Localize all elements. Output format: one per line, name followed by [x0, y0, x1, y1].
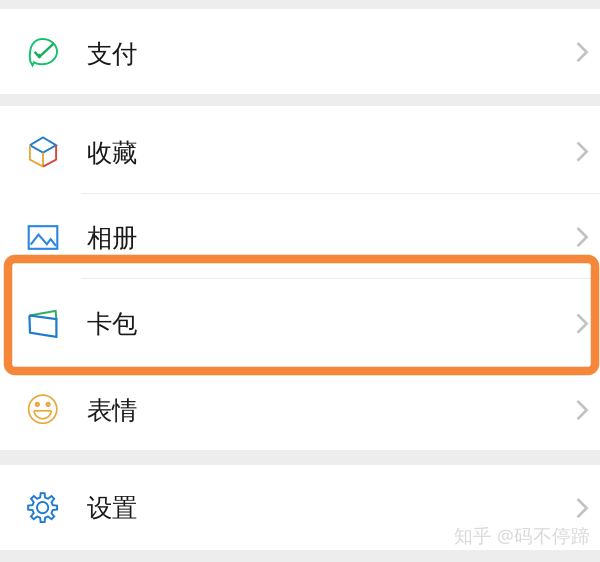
button[interactable]: 支付 — [0, 9, 600, 94]
button[interactable]: 收藏 — [0, 106, 600, 193]
button[interactable]: 设置 — [0, 465, 600, 550]
button[interactable]: 表情 — [0, 360, 600, 450]
staticText: 卡包 — [87, 308, 137, 339]
staticText: 知乎 @码不停蹄 — [454, 523, 590, 548]
staticText: 设置 — [87, 492, 137, 523]
staticText: 收藏 — [87, 137, 137, 168]
button[interactable]: 相册 — [0, 194, 600, 278]
staticText: 支付 — [87, 38, 137, 69]
button[interactable]: 卡包 — [0, 279, 600, 360]
staticText: 表情 — [87, 395, 137, 426]
staticText: 相册 — [87, 222, 137, 253]
